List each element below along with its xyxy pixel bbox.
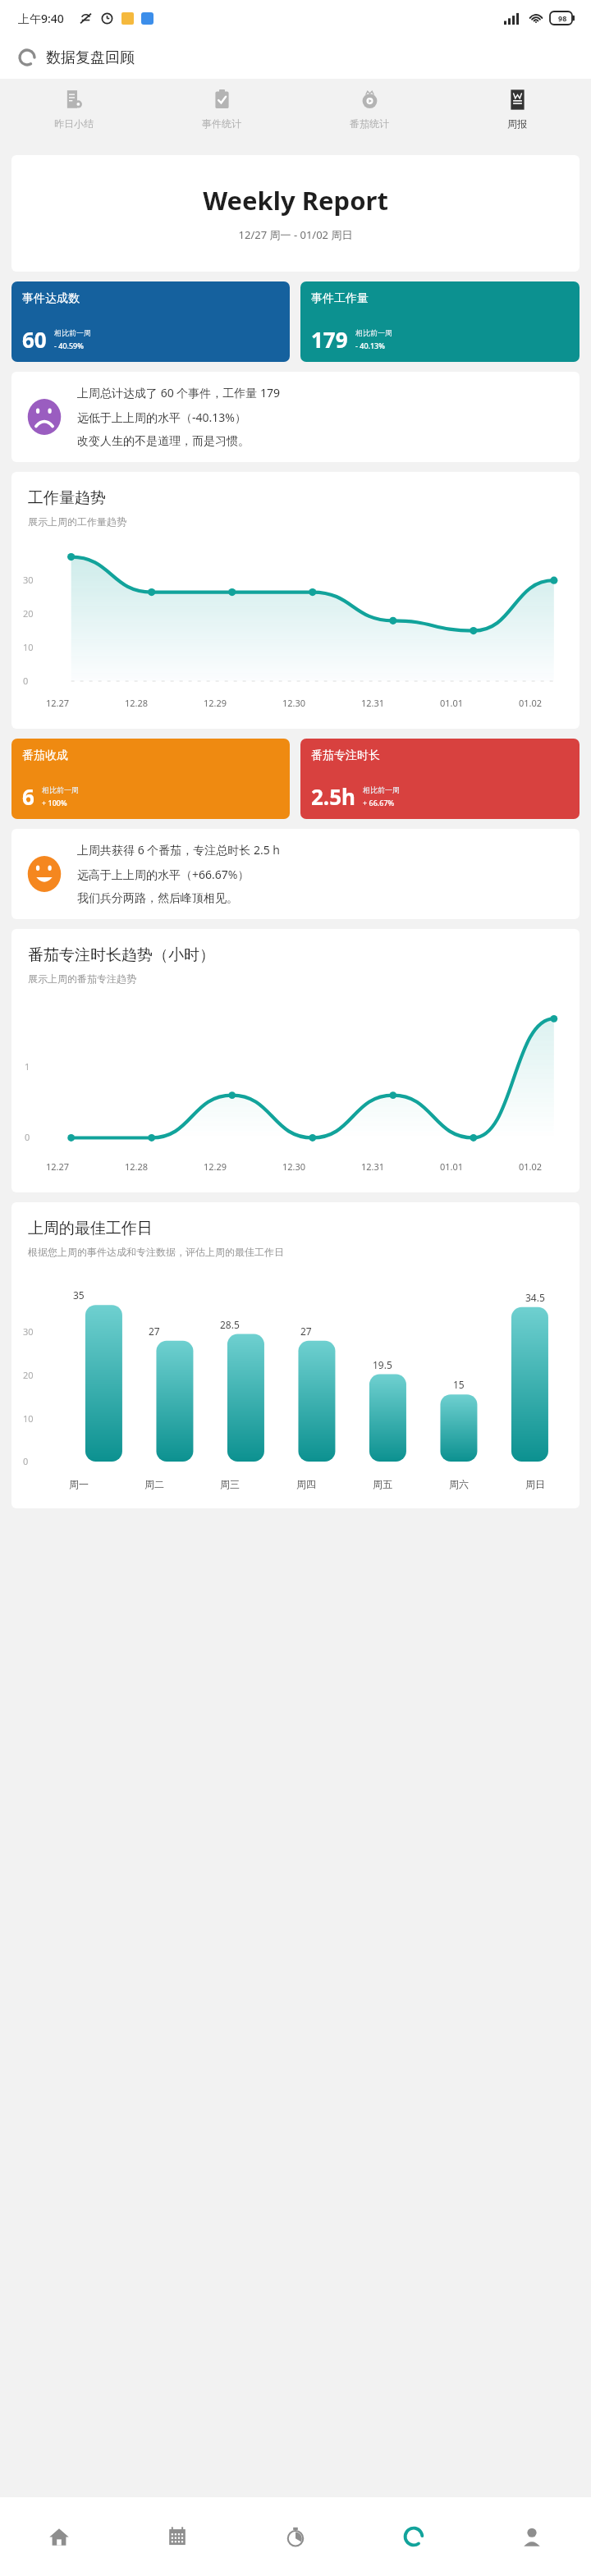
staticText: 周二 xyxy=(144,1478,164,1490)
staticText: 番茄专注时长 xyxy=(311,748,380,763)
staticText: 上午9:40 xyxy=(18,11,64,26)
staticText: 12.30 xyxy=(282,1160,306,1173)
staticText: 相比前一周 xyxy=(355,328,392,337)
staticText: 6 xyxy=(22,782,34,811)
staticText: + 66.67% xyxy=(363,798,395,808)
staticText: 12/27 周一 - 01/02 周日 xyxy=(11,227,580,242)
staticText: 事件工作量 xyxy=(311,291,369,306)
staticText: 12.29 xyxy=(204,1160,227,1173)
staticText: 数据复盘回顾 xyxy=(46,48,135,67)
staticText: 12.28 xyxy=(125,697,149,709)
staticText: 01.02 xyxy=(519,697,543,709)
staticText: 34.5 xyxy=(525,1291,545,1304)
staticText: 0 xyxy=(25,1131,30,1143)
staticText: 上周的最佳工作日 xyxy=(28,1219,153,1238)
staticText: 01.01 xyxy=(440,697,464,709)
staticText: 远高于上上周的水平（+66.67%） xyxy=(77,867,250,882)
staticText: 1 xyxy=(25,1060,30,1073)
staticText: 周报 xyxy=(507,117,527,130)
button[interactable]: 昨日小结 xyxy=(0,79,148,144)
staticText: 事件达成数 xyxy=(22,291,80,306)
staticText: 01.02 xyxy=(519,1160,543,1173)
staticText: 番茄收成 xyxy=(22,748,68,763)
staticText: 上周总计达成了 60 个事件，工作量 179 xyxy=(77,385,280,400)
staticText: 根据您上周的事件达成和专注数据，评估上周的最佳工作日 xyxy=(28,1246,284,1258)
staticText: 12.27 xyxy=(46,1160,70,1173)
button[interactable]: Timer xyxy=(236,2497,355,2576)
staticText: - 40.59% xyxy=(54,341,84,350)
staticText: 上周共获得 6 个番茄，专注总时长 2.5 h xyxy=(77,842,280,858)
staticText: 12.29 xyxy=(204,697,227,709)
staticText: 番茄专注时长趋势（小时） xyxy=(28,945,215,965)
button[interactable]: 事件统计 xyxy=(148,79,295,144)
staticText: 周四 xyxy=(296,1478,316,1490)
button[interactable]: Home xyxy=(0,2497,118,2576)
staticText: 30 xyxy=(23,574,34,586)
staticText: 2.5h xyxy=(311,782,355,811)
staticText: 展示上周的工作量趋势 xyxy=(28,515,126,528)
staticText: 周一 xyxy=(69,1478,89,1490)
staticText: 相比前一周 xyxy=(42,785,79,794)
staticText: 01.01 xyxy=(440,1160,464,1173)
staticText: 12.31 xyxy=(361,1160,385,1173)
button[interactable]: 事件工作量 xyxy=(300,281,580,362)
staticText: 我们兵分两路，然后峰顶相见。 xyxy=(77,891,238,906)
staticText: 60 xyxy=(22,325,47,354)
staticText: 12.31 xyxy=(361,697,385,709)
staticText: 35 xyxy=(73,1288,85,1302)
button[interactable]: 番茄专注时长 xyxy=(300,739,580,819)
staticText: 周六 xyxy=(449,1478,469,1490)
button[interactable]: 事件达成数 xyxy=(11,281,290,362)
staticText: 昨日小结 xyxy=(54,117,94,130)
staticText: 20 xyxy=(23,1369,34,1381)
staticText: 0 xyxy=(23,1455,29,1467)
staticText: 30 xyxy=(23,1325,34,1338)
staticText: 27 xyxy=(300,1325,312,1338)
staticText: 0 xyxy=(23,675,29,687)
staticText: 10 xyxy=(23,1412,34,1425)
staticText: 98 xyxy=(558,13,567,23)
staticText: 相比前一周 xyxy=(363,785,400,794)
button[interactable]: Calendar xyxy=(118,2497,236,2576)
staticText: 27 xyxy=(149,1325,160,1338)
staticText: 周五 xyxy=(373,1478,392,1490)
staticText: 12.27 xyxy=(46,697,70,709)
staticText: 12.28 xyxy=(125,1160,149,1173)
staticText: 周三 xyxy=(220,1478,240,1490)
staticText: 展示上周的番茄专注趋势 xyxy=(28,972,136,985)
staticText: 15 xyxy=(453,1378,465,1391)
button[interactable]: 周报 xyxy=(443,79,591,144)
staticText: 19.5 xyxy=(373,1358,392,1371)
staticText: 工作量趋势 xyxy=(28,488,106,508)
staticText: 10 xyxy=(23,641,34,653)
staticText: 事件统计 xyxy=(202,117,241,130)
staticText: 周日 xyxy=(525,1478,545,1490)
staticText: Weekly Report xyxy=(11,183,580,217)
button[interactable]: Profile xyxy=(473,2497,591,2576)
staticText: 远低于上上周的水平（-40.13%） xyxy=(77,410,246,425)
staticText: 179 xyxy=(311,325,348,354)
button[interactable]: 番茄统计 xyxy=(295,79,443,144)
staticText: - 40.13% xyxy=(355,341,385,350)
staticText: 相比前一周 xyxy=(54,328,91,337)
staticText: 改变人生的不是道理，而是习惯。 xyxy=(77,434,250,449)
button[interactable]: 番茄收成 xyxy=(11,739,290,819)
staticText: 20 xyxy=(23,607,34,620)
button[interactable]: Review xyxy=(355,2497,473,2576)
staticText: + 100% xyxy=(42,798,67,808)
staticText: 番茄统计 xyxy=(350,117,389,130)
staticText: 12.30 xyxy=(282,697,306,709)
staticText: 28.5 xyxy=(220,1318,240,1331)
